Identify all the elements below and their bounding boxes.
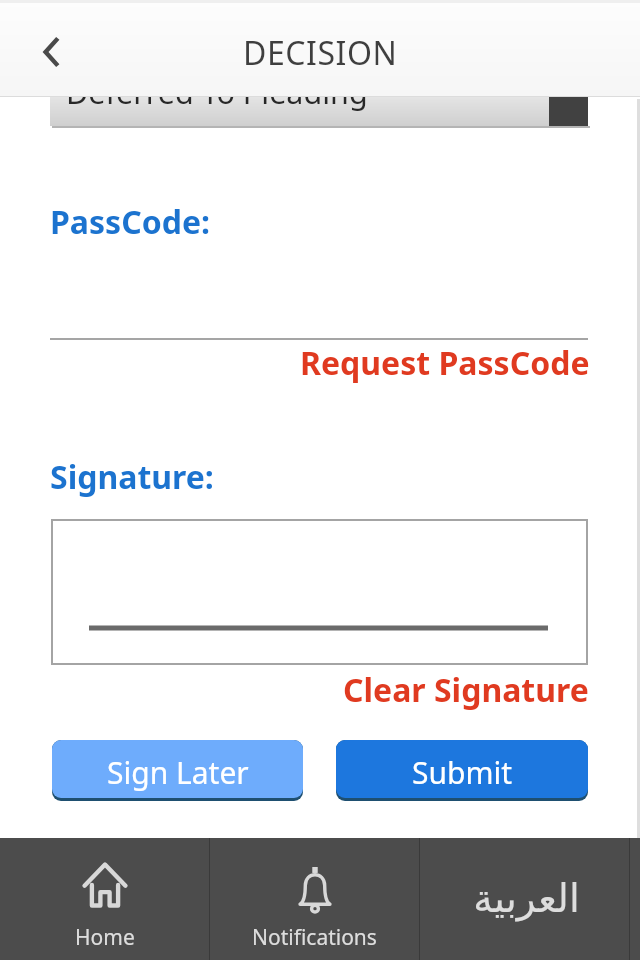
button[interactable]: Clear Signature [343, 668, 589, 712]
staticText: DECISION [243, 31, 398, 75]
button[interactable]: Notifications [210, 838, 419, 960]
staticText: Submit [412, 752, 513, 793]
staticText: Home [75, 923, 135, 952]
button[interactable]: Back [22, 22, 82, 82]
staticText: العربية [473, 876, 580, 921]
staticText: Deferred To Pleading [66, 71, 368, 113]
button[interactable]: Home [0, 838, 209, 960]
button[interactable]: Deferred To Pleading [50, 76, 588, 126]
button[interactable]: العربية [420, 838, 629, 960]
staticText: Notifications [252, 923, 377, 952]
button[interactable]: Request PassCode [300, 341, 590, 385]
staticText: Sign Later [107, 752, 249, 793]
staticText: Signature: [50, 455, 214, 499]
staticText: PassCode: [50, 200, 211, 244]
button[interactable]: Submit [336, 740, 588, 798]
button[interactable]: Sign Later [52, 740, 303, 798]
